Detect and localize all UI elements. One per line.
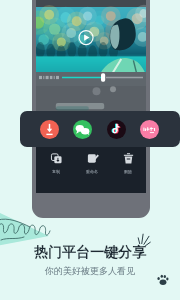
button[interactable]: 复制: [38, 149, 74, 174]
button[interactable]: Xiaohongshu: [140, 120, 159, 139]
staticText: 热门平台一键分享: [34, 244, 146, 262]
button[interactable]: 重命名: [74, 149, 110, 174]
staticText: 复制: [52, 169, 60, 174]
staticText: 你的美好被更多人看见: [45, 265, 135, 276]
button[interactable]: Download: [40, 120, 59, 139]
staticText: 重命名: [86, 169, 98, 174]
button[interactable]: WeChat: [73, 120, 92, 139]
button[interactable]: Douyin: [107, 120, 126, 139]
staticText: 删除: [124, 169, 132, 174]
button[interactable]: 删除: [110, 149, 146, 174]
